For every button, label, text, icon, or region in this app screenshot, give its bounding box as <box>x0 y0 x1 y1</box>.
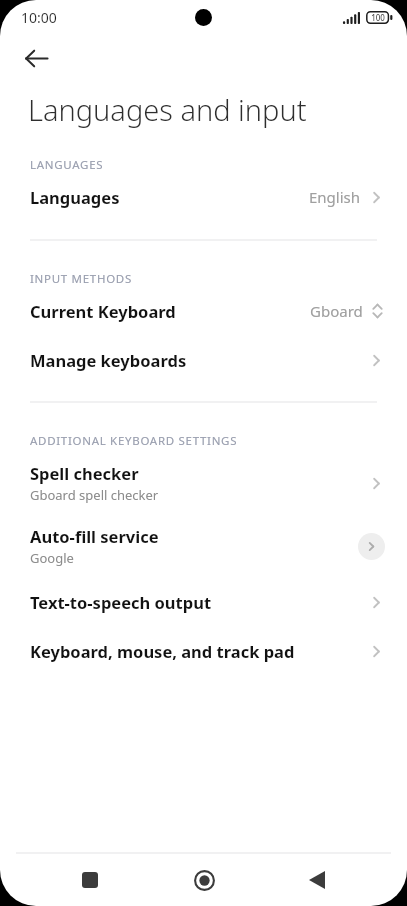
button[interactable]: Back <box>15 37 57 79</box>
button[interactable]: Back <box>294 857 340 903</box>
staticText: Keyboard, mouse, and track pad <box>30 640 295 662</box>
button[interactable]: Text-to-speech output <box>0 591 407 613</box>
staticText: 100 <box>371 12 385 23</box>
button[interactable]: Home <box>181 857 227 903</box>
button[interactable]: Keyboard, mouse, and track pad <box>0 640 407 662</box>
staticText: Gboard <box>310 301 363 321</box>
staticText: Auto-fill service <box>30 525 159 547</box>
staticText: English <box>309 187 361 207</box>
staticText: Current Keyboard <box>30 300 176 322</box>
button[interactable]: Manage keyboards <box>0 349 407 371</box>
button[interactable]: Languages <box>0 186 407 208</box>
staticText: Languages and input <box>28 90 389 129</box>
button[interactable]: Recent apps <box>67 857 113 903</box>
staticText: Gboard spell checker <box>30 486 159 504</box>
button[interactable]: Spell checker <box>0 462 407 504</box>
staticText: 10:00 <box>21 8 57 27</box>
staticText: Google <box>30 549 74 567</box>
staticText: LANGUAGES <box>30 157 389 173</box>
staticText: Languages <box>30 186 120 208</box>
staticText: ADDITIONAL KEYBOARD SETTINGS <box>30 433 389 449</box>
staticText: INPUT METHODS <box>30 271 389 287</box>
staticText: Text-to-speech output <box>30 591 212 613</box>
staticText: Manage keyboards <box>30 349 187 371</box>
staticText: Spell checker <box>30 462 139 484</box>
button[interactable]: Auto-fill service <box>0 525 407 567</box>
button[interactable]: Current Keyboard <box>0 300 407 322</box>
